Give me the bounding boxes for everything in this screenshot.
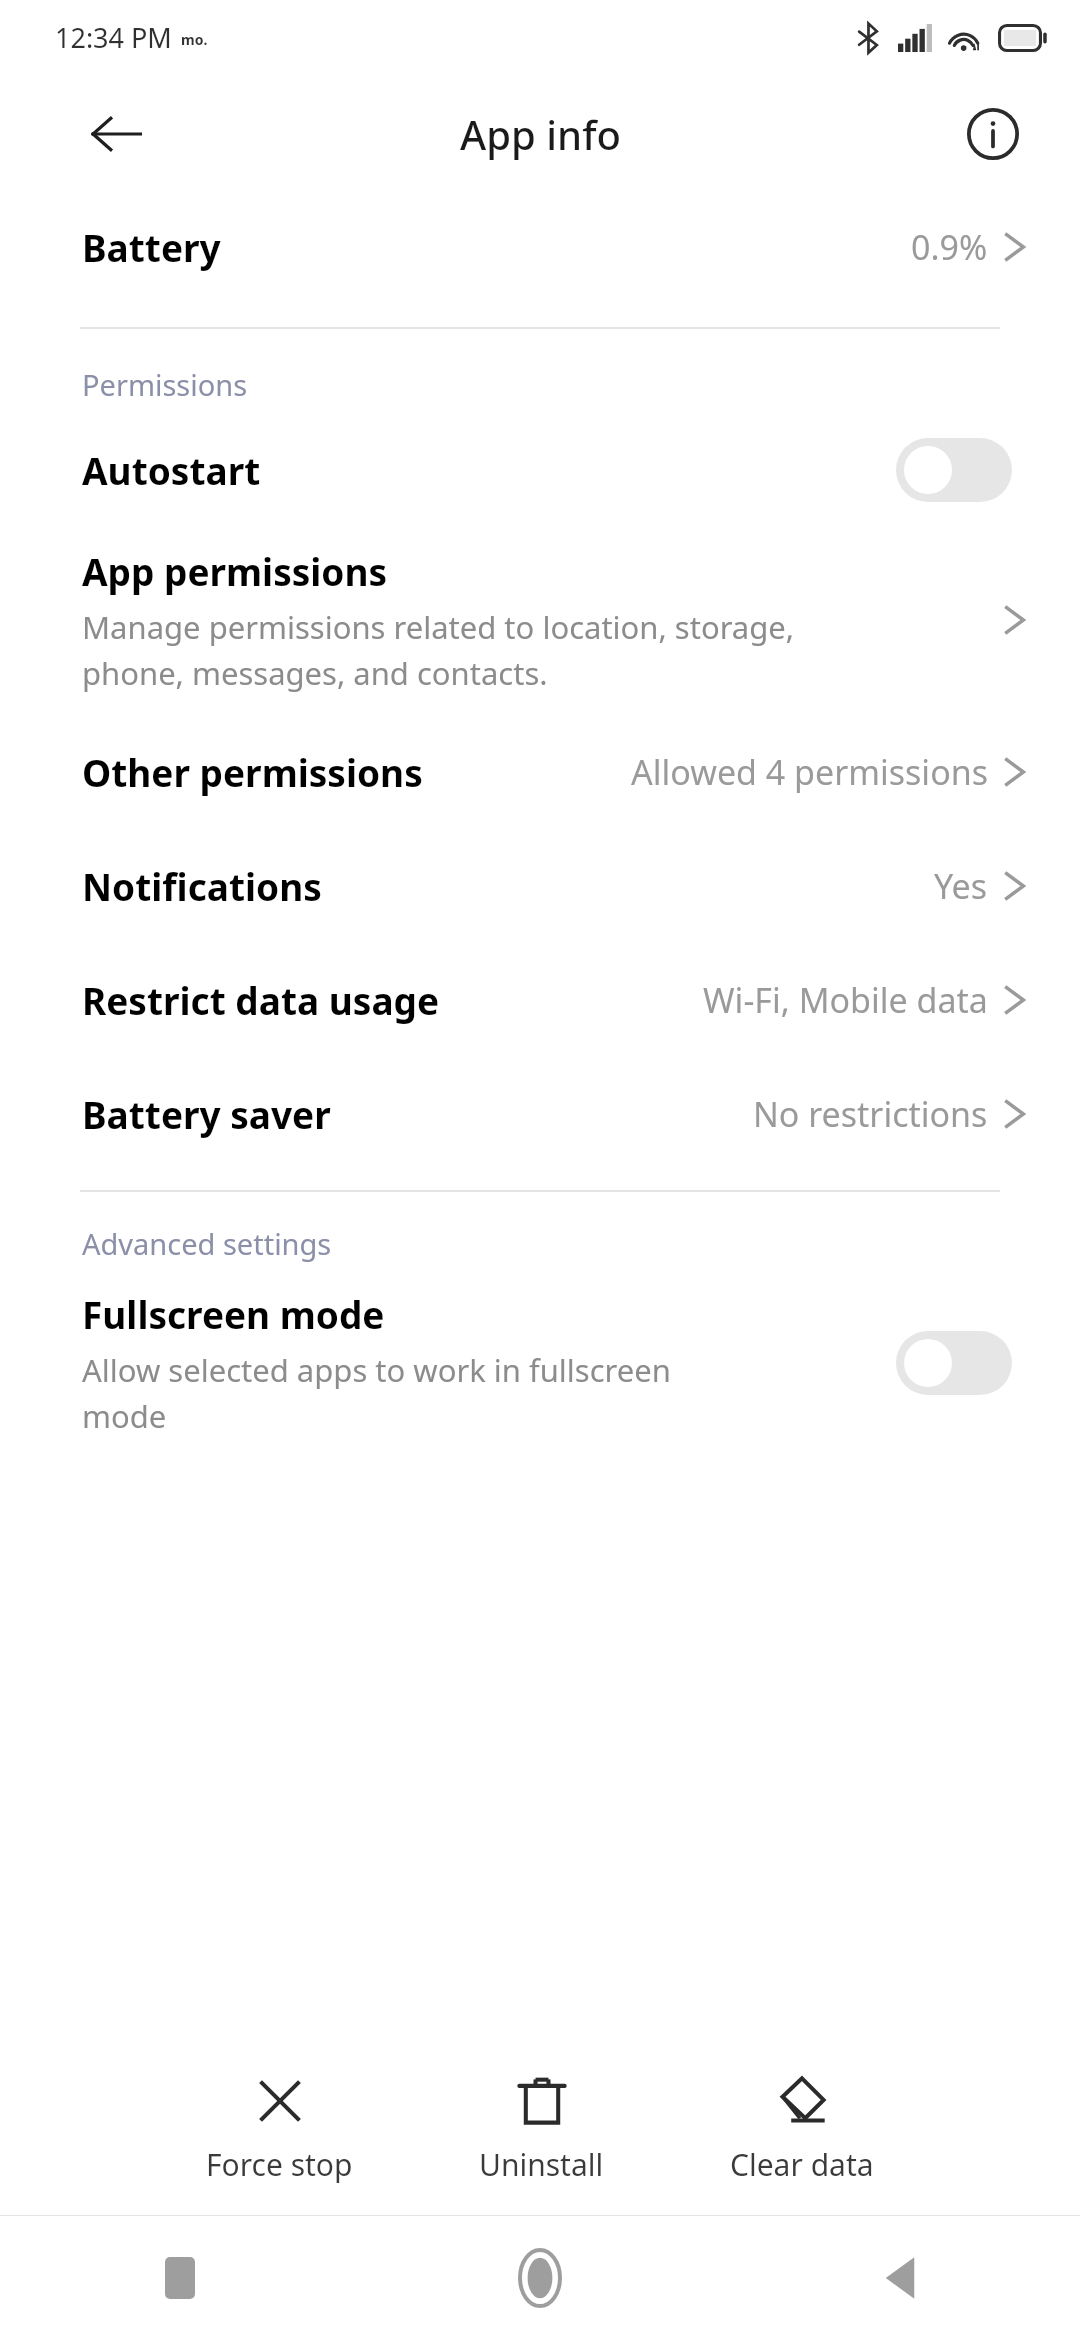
staticText: Manage permissions related to location, … (82, 606, 795, 694)
staticText: Uninstall (479, 2144, 604, 2185)
button[interactable]: Recent apps (0, 2216, 360, 2340)
button[interactable]: Toggle (896, 1331, 1012, 1395)
staticText: mo. (181, 30, 208, 49)
staticText: Battery saver (82, 1089, 331, 1139)
staticText: Clear data (730, 2144, 874, 2185)
staticText: App info (460, 107, 621, 161)
button[interactable]: Battery (0, 199, 1080, 295)
staticText: Other permissions (82, 747, 423, 797)
staticText: Notifications (82, 861, 322, 911)
staticText: Advanced settings (82, 1224, 332, 1263)
staticText: App permissions (82, 546, 388, 596)
button[interactable]: App details (950, 91, 1036, 177)
button[interactable]: Uninstall (473, 2066, 610, 2193)
button[interactable]: Autostart (0, 422, 1080, 518)
staticText: Autostart (82, 445, 261, 495)
staticText: Restrict data usage (82, 975, 440, 1025)
button[interactable]: Notifications (0, 838, 1080, 934)
staticText: Battery (82, 222, 221, 272)
button[interactable]: Battery saver (0, 1066, 1080, 1162)
button[interactable]: Fullscreen mode (0, 1277, 1080, 1449)
button[interactable]: App permissions (0, 532, 1080, 708)
staticText: Permissions (82, 365, 248, 404)
staticText: Force stop (206, 2144, 353, 2185)
staticText: Allowed 4 permissions (631, 749, 988, 795)
button[interactable]: Restrict data usage (0, 952, 1080, 1048)
button[interactable]: Clear data (724, 2066, 880, 2193)
button[interactable]: Home (360, 2216, 720, 2340)
button[interactable]: Back (70, 88, 162, 180)
staticText: Yes (934, 863, 988, 909)
button[interactable]: Toggle (896, 438, 1012, 502)
button[interactable]: Back (720, 2216, 1080, 2340)
staticText: No restrictions (753, 1091, 988, 1137)
staticText: 0.9% (911, 224, 988, 270)
staticText: 12:34 PM (55, 19, 172, 56)
staticText: Wi-Fi, Mobile data (703, 977, 988, 1023)
button[interactable]: Other permissions (0, 724, 1080, 820)
staticText: Fullscreen mode (82, 1289, 385, 1339)
button[interactable]: Force stop (200, 2066, 359, 2193)
staticText: Allow selected apps to work in fullscree… (82, 1349, 671, 1437)
